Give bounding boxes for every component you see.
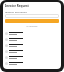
button[interactable]	[5, 54, 59, 60]
button[interactable]	[5, 14, 59, 18]
button[interactable]	[5, 60, 59, 66]
staticText: Invoice Request	[5, 4, 29, 8]
button[interactable]	[5, 36, 59, 42]
button[interactable]	[5, 30, 59, 36]
button[interactable]	[5, 42, 59, 48]
staticText: Identity Document	[5, 10, 27, 13]
staticText: or continue	[3, 25, 61, 28]
button[interactable]	[5, 48, 59, 54]
button[interactable]	[5, 19, 59, 23]
